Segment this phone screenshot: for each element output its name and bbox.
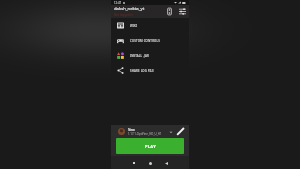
staticText: daksh_nekta_yt (114, 6, 145, 12)
button[interactable]: Back (161, 158, 171, 168)
staticText: 12:47 (114, 1, 122, 5)
button[interactable]: Edit profile (176, 127, 185, 136)
button[interactable]: New (111, 125, 189, 138)
staticText: Not logged in (114, 13, 134, 17)
button[interactable]: Home (145, 158, 155, 168)
button[interactable]: SHARE LOG FILE (111, 63, 189, 78)
staticText: 1.17.1-OptiFine_HD_U_H1 (128, 132, 162, 136)
button[interactable]: Settings (176, 5, 189, 18)
button[interactable]: CUSTOM CONTROLS (111, 33, 189, 48)
button[interactable]: PLAY (116, 138, 184, 154)
button[interactable]: WIKI (111, 18, 189, 33)
button[interactable]: INSTALL .JAR (111, 48, 189, 63)
staticText: New (128, 128, 135, 132)
staticText: INSTALL .JAR (130, 54, 149, 58)
staticText: SHARE LOG FILE (130, 69, 155, 73)
staticText: PLAY (145, 144, 156, 149)
staticText: CUSTOM CONTROLS (130, 39, 160, 43)
button[interactable]: Recents (129, 158, 139, 168)
button[interactable]: Account (163, 5, 176, 18)
staticText: WIKI (130, 24, 138, 28)
